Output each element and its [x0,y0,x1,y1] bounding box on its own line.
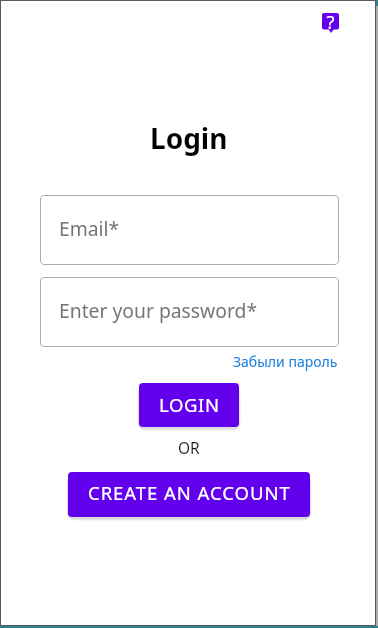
staticText: Enter your password* [59,297,258,323]
button[interactable]: Забыли пароль [232,351,339,372]
staticText: LOGIN [159,392,220,417]
staticText: Забыли пароль [233,352,338,371]
button[interactable]: Email* [40,195,339,265]
staticText: OR [178,437,200,458]
button[interactable]: CREATE AN ACCOUNT [68,472,310,517]
staticText: CREATE AN ACCOUNT [88,480,291,505]
button[interactable]: LOGIN [139,383,239,427]
staticText: Login [150,119,228,157]
staticText: ? [322,9,339,29]
staticText: Email* [59,215,120,241]
button[interactable]: Help [322,13,339,33]
button[interactable]: Enter your password* [40,277,339,347]
